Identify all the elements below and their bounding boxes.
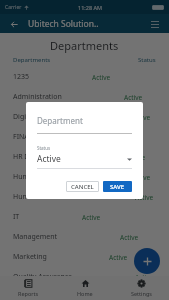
button[interactable]: Management [0,227,169,247]
staticText: Human Resource [13,172,70,182]
button[interactable]: Administration [0,87,169,107]
staticText: Quality Assurance [13,272,73,282]
staticText: IT [13,212,20,222]
staticText: HR Department [13,152,65,162]
button[interactable]: FINANCE [0,127,169,147]
staticText: Settings [131,290,152,297]
button[interactable]: CANCEL [66,181,99,192]
staticText: SAVE [110,183,125,191]
button[interactable]: Menu [147,16,163,32]
staticText: Reports [18,290,39,297]
staticText: Ubitech Solution.. [28,18,99,30]
staticText: Active [132,113,151,122]
staticText: Active [92,73,111,82]
staticText: Management [13,232,58,242]
staticText: FINANCE [13,132,43,142]
staticText: 11:28 AM [78,4,102,11]
staticText: 1235 [13,72,30,82]
button[interactable]: Human Resources [0,187,169,207]
staticText: Marketing [13,252,47,262]
button[interactable]: Settings [113,276,169,300]
staticText: CANCEL [71,183,94,191]
staticText: Active [132,173,151,182]
staticText: Home [77,290,93,297]
button[interactable]: Marketing [0,247,169,267]
staticText: Departments [50,38,119,53]
button[interactable]: Reports [0,276,57,300]
staticText: Departments [13,56,51,64]
staticText: Active [135,273,154,282]
staticText: Active [82,213,101,222]
staticText: Digital Marketing [13,112,70,122]
staticText: Active [135,193,154,202]
button[interactable]: HR Department [0,147,169,167]
staticText: Active [105,133,124,142]
staticText: Active [109,253,128,262]
staticText: Active [124,93,143,102]
staticText: Administration [13,92,62,102]
button[interactable]: Digital Marketing [0,107,169,127]
button[interactable]: SAVE [103,181,132,192]
staticText: Status [138,56,156,64]
staticText: Department [37,115,83,126]
button[interactable]: Quality Assurance [0,267,169,287]
button[interactable]: Human Resource [0,167,169,187]
staticText: Carrier [5,4,22,11]
button[interactable]: 1235 [0,67,169,87]
button[interactable]: Home [57,276,113,300]
button[interactable]: Back [6,16,22,32]
staticText: Active [127,153,146,162]
staticText: Active [120,233,139,242]
button[interactable]: IT [0,207,169,227]
staticText: Status [37,145,51,151]
staticText: Active [37,153,61,165]
staticText: Human Resources [13,192,73,202]
button[interactable]: Add department [134,248,160,274]
